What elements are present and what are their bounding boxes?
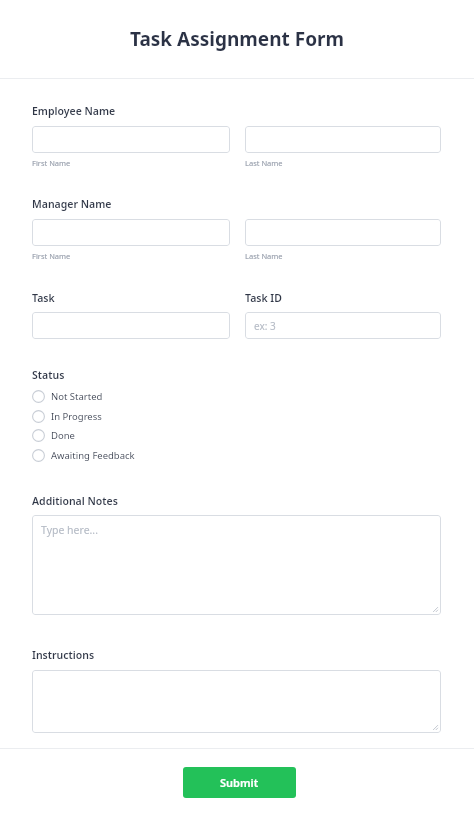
staticText: Status (32, 368, 65, 382)
staticText: Additional Notes (32, 494, 118, 508)
staticText: Done (51, 429, 75, 442)
button[interactable]: Task ID (245, 312, 441, 339)
staticText: Task (32, 291, 55, 305)
button[interactable]: Instructions (32, 670, 441, 733)
staticText: Task ID (245, 291, 282, 305)
staticText: ex: 3 (254, 319, 276, 333)
staticText: Manager Name (32, 197, 112, 211)
staticText: First Name (32, 158, 71, 168)
button[interactable]: Task (32, 312, 230, 339)
staticText: Employee Name (32, 104, 116, 118)
staticText: Task Assignment Form (0, 26, 474, 52)
staticText: In Progress (51, 410, 102, 423)
staticText: Not Started (51, 390, 103, 403)
button[interactable]: Employee last name (245, 126, 441, 153)
staticText: Instructions (32, 648, 95, 662)
staticText: Submit (220, 775, 259, 790)
button[interactable]: Not Started (32, 387, 212, 406)
button[interactable]: Employee first name (32, 126, 230, 153)
button[interactable]: Manager last name (245, 219, 441, 246)
button[interactable]: Submit (183, 767, 296, 798)
button[interactable]: Done (32, 426, 212, 445)
button[interactable]: Additional Notes (32, 515, 441, 615)
button[interactable]: Awaiting Feedback (32, 446, 212, 465)
button[interactable]: Manager first name (32, 219, 230, 246)
staticText: Last Name (245, 251, 283, 261)
button[interactable]: In Progress (32, 407, 212, 426)
staticText: First Name (32, 251, 71, 261)
staticText: Awaiting Feedback (51, 449, 135, 462)
staticText: Last Name (245, 158, 283, 168)
staticText: Type here... (41, 523, 98, 537)
